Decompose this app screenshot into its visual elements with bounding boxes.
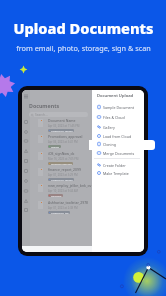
staticText: Waiting for Others	[51, 129, 73, 132]
button[interactable]: iOS_signNow_cb	[38, 151, 92, 166]
button[interactable]: Menu item	[24, 139, 28, 143]
button[interactable]: Sample Document	[97, 103, 142, 111]
staticText: Files & Cloud	[103, 115, 125, 120]
staticText: Apr 01, 2023 at 3:29 PM	[48, 173, 78, 177]
button[interactable]: Menu item	[24, 208, 28, 212]
staticText: Apr 01, 2023 at 2:38 PM	[48, 206, 78, 210]
staticText: Document Name	[48, 118, 76, 123]
staticText: Create Folder	[103, 163, 126, 168]
staticText: Gallery	[103, 125, 115, 130]
staticText: iOS_signNow_cb	[48, 151, 75, 156]
button[interactable]: Promotions_approval	[38, 134, 92, 149]
button[interactable]: Cloning	[97, 140, 142, 148]
staticText: Ashhariaz_tooltriar_2978	[48, 200, 89, 205]
staticText: Apr 06, 2023 at 3:41 PM	[48, 140, 78, 144]
staticText: Search...	[35, 113, 48, 117]
button[interactable]: finance_report_2099	[38, 167, 92, 182]
button[interactable]: Menu item	[24, 179, 28, 183]
staticText: Pending Payment	[51, 162, 72, 165]
staticText: Make Template	[103, 171, 129, 176]
staticText: Apr 03, 2023 at 11:45 PM	[48, 124, 80, 128]
staticText: Declined	[51, 194, 62, 197]
button[interactable]: Menu item	[24, 159, 28, 163]
button[interactable]: Merge Documents	[97, 149, 142, 157]
button[interactable]: Load from Cloud	[97, 132, 142, 140]
button[interactable]: Menu item	[24, 130, 28, 134]
staticText: Apr 10, 2023 at 9:44 AM	[48, 189, 78, 193]
button[interactable]: Create Folder	[97, 161, 142, 169]
staticText: Signed	[51, 145, 60, 148]
staticText: Waiting for Me	[51, 211, 69, 214]
button[interactable]: Search...	[29, 112, 88, 117]
button[interactable]: Cloning	[89, 140, 155, 150]
button[interactable]: Menu item	[24, 189, 28, 193]
staticText: Document Upload	[97, 93, 134, 99]
staticText: Load from Cloud	[103, 134, 132, 139]
staticText: Merge Documents	[103, 151, 135, 156]
staticText: Mar 16, 2023 at 7:05 PM	[48, 157, 79, 161]
staticText: from email, photo, storage, sign & scan	[16, 43, 151, 53]
staticText: Upload Documents	[13, 18, 154, 38]
staticText: new_employ_jelikn_bnk_over	[48, 183, 92, 188]
staticText: Cloning	[103, 142, 116, 147]
staticText: Documents	[29, 102, 60, 109]
button[interactable]: Files & Cloud	[97, 113, 142, 121]
button[interactable]: Menu item	[24, 199, 28, 203]
button[interactable]: Menu item	[24, 120, 28, 124]
button[interactable]: Document Name	[38, 118, 92, 133]
staticText: Waiting for Others	[51, 178, 73, 181]
button[interactable]: Ashhariaz_tooltriar_2978	[38, 200, 92, 215]
staticText: Promotions_approval	[48, 134, 83, 139]
staticText: finance_report_2099	[48, 167, 81, 172]
button[interactable]: Make Template	[97, 169, 142, 177]
button[interactable]: Gallery	[97, 123, 142, 131]
button[interactable]: Menu item	[24, 169, 28, 173]
button[interactable]: new_employ_jelikn_bnk_over	[38, 183, 92, 198]
staticText: Sample Document	[103, 105, 135, 110]
button[interactable]: Menu item	[24, 149, 28, 153]
